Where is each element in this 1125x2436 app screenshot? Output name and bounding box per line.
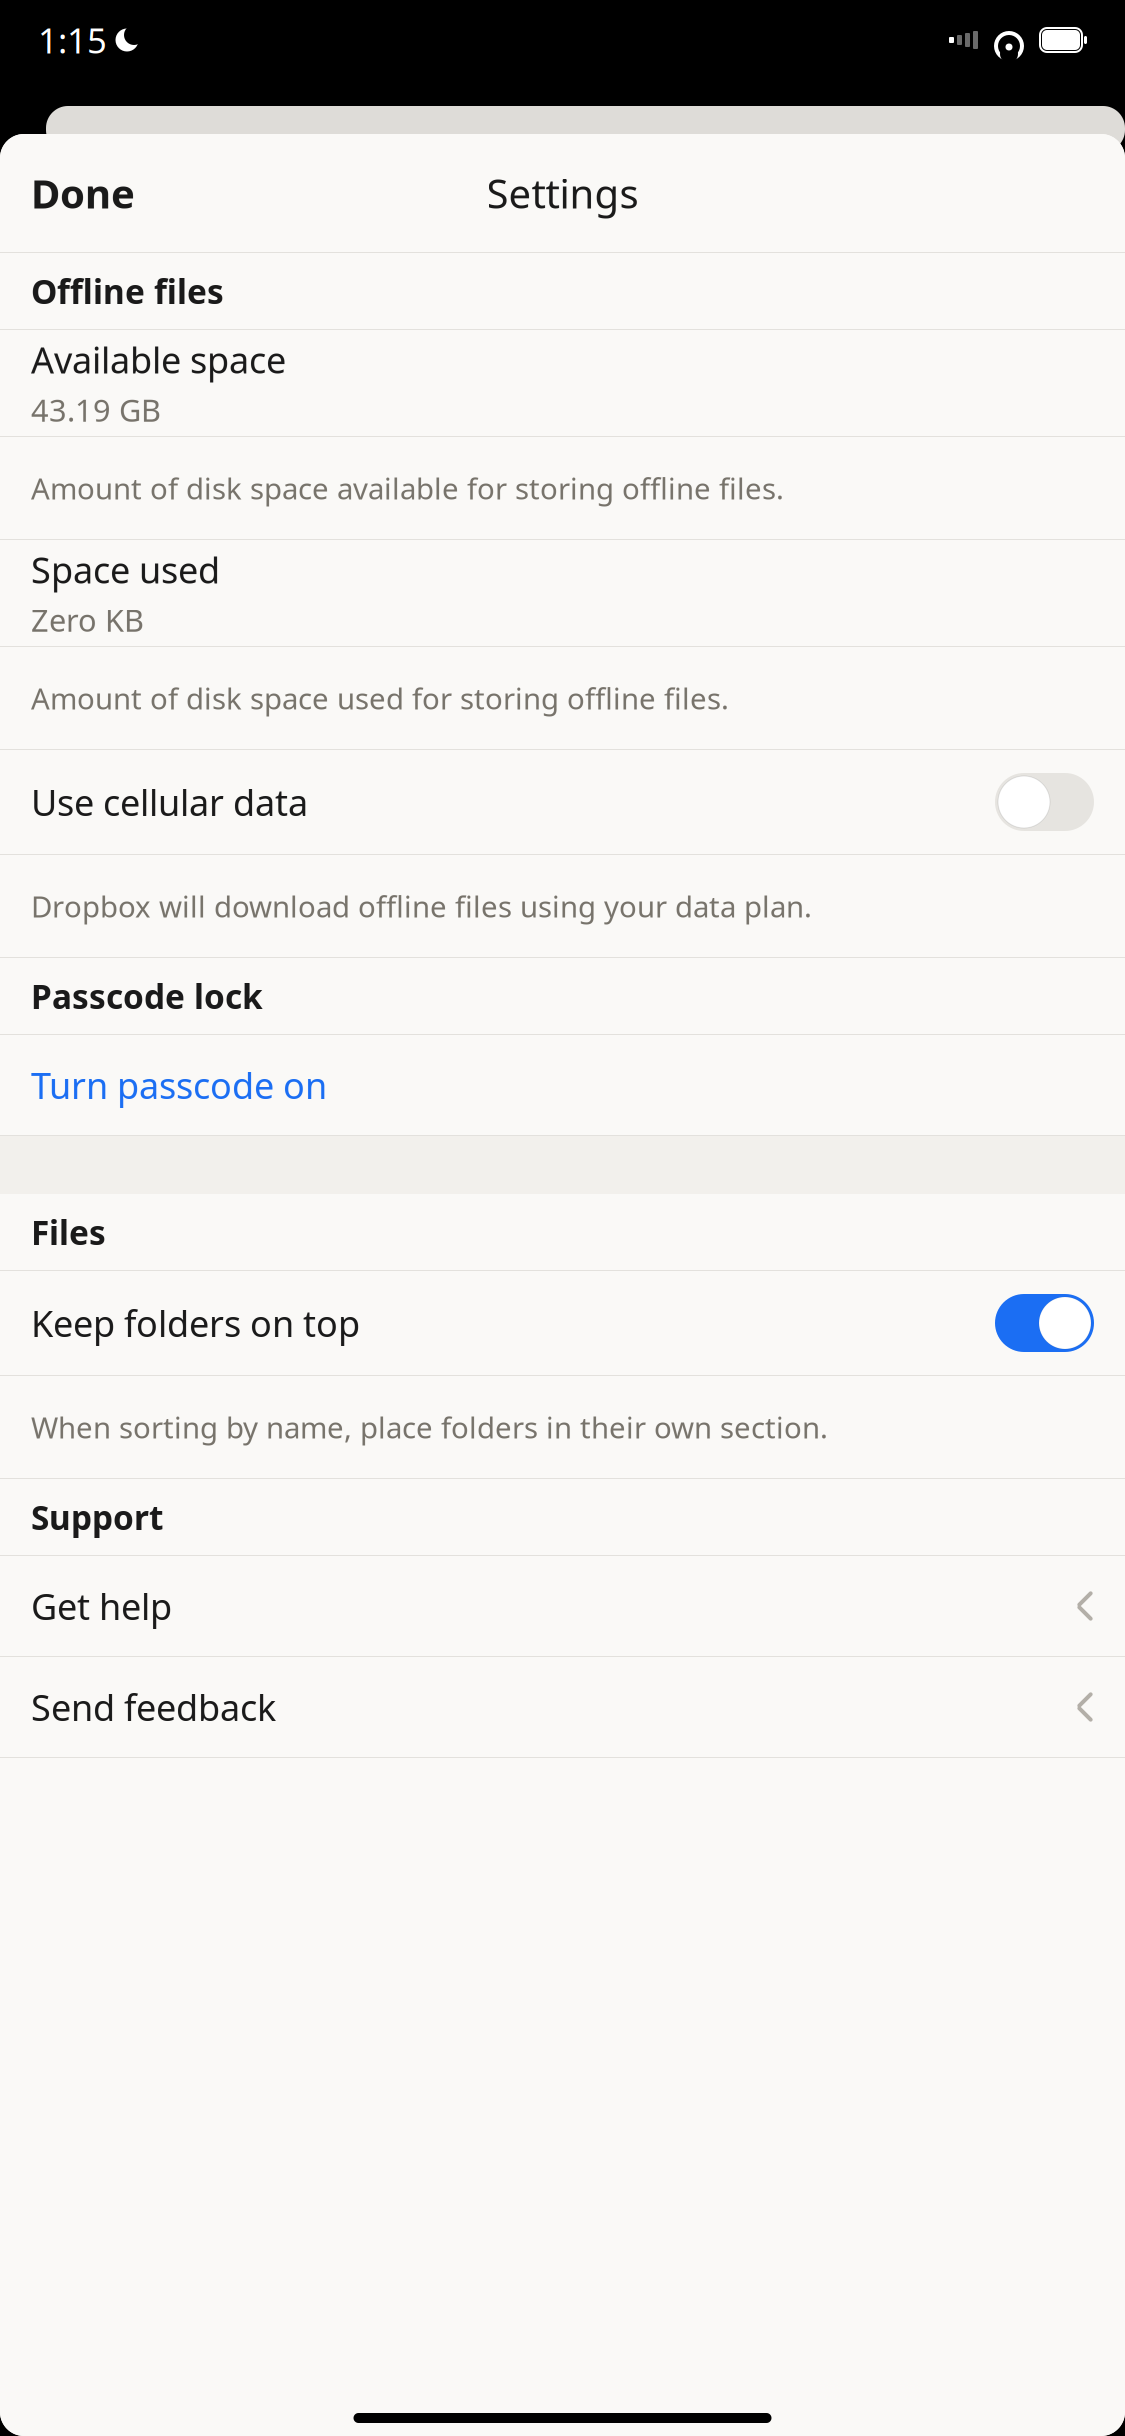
button[interactable]: Keep folders on top: [0, 1271, 1125, 1375]
button[interactable]: Done: [0, 148, 166, 237]
staticText: Passcode lock: [31, 974, 263, 1018]
staticText: Amount of disk space used for storing of…: [31, 678, 729, 717]
staticText: Files: [31, 1210, 106, 1254]
button[interactable]: Send feedback: [0, 1657, 1125, 1757]
button[interactable]: Use cellular data: [0, 750, 1125, 854]
staticText: Support: [31, 1495, 163, 1539]
staticText: Dropbox will download offline files usin…: [31, 886, 812, 925]
staticText: Amount of disk space available for stori…: [31, 468, 784, 507]
staticText: Keep folders on top: [31, 1299, 360, 1347]
staticText: Turn passcode on: [31, 1061, 327, 1109]
staticText: Send feedback: [31, 1683, 276, 1731]
staticText: Zero KB: [31, 599, 144, 640]
staticText: Done: [31, 166, 135, 219]
button[interactable]: Turn passcode on: [0, 1035, 1125, 1135]
staticText: Space used: [31, 546, 220, 593]
button[interactable]: Space used: [0, 540, 1125, 646]
staticText: 43.19 GB: [31, 389, 161, 430]
staticText: Available space: [31, 336, 286, 383]
button[interactable]: Available space: [0, 330, 1125, 436]
staticText: Get help: [31, 1582, 172, 1630]
button[interactable]: Get help: [0, 1556, 1125, 1656]
staticText: When sorting by name, place folders in t…: [31, 1407, 828, 1446]
staticText: 1:15: [38, 17, 107, 63]
staticText: Settings: [486, 166, 638, 219]
staticText: Use cellular data: [31, 778, 308, 826]
staticText: Offline files: [31, 269, 224, 313]
